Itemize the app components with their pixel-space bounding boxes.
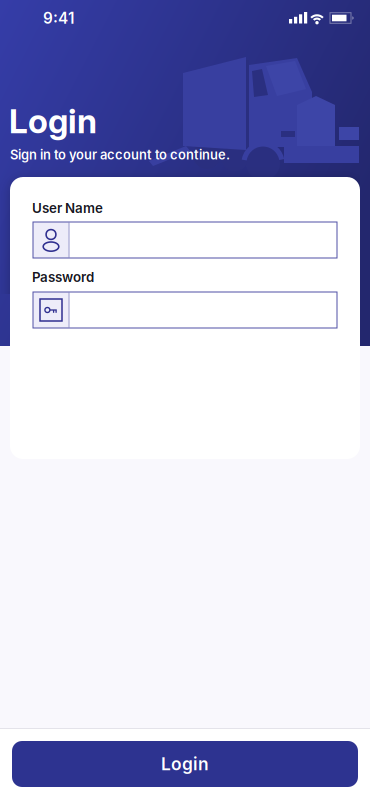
staticText: Password	[32, 269, 94, 285]
staticText: Login	[161, 753, 209, 774]
button[interactable]: User Name	[33, 222, 337, 258]
staticText: Login	[9, 101, 97, 141]
staticText: 9:41	[43, 9, 74, 28]
staticText: User Name	[32, 200, 103, 216]
staticText: Sign in to your account to continue.	[10, 147, 230, 163]
button[interactable]: Password	[33, 292, 337, 328]
button[interactable]: Login	[12, 741, 358, 787]
